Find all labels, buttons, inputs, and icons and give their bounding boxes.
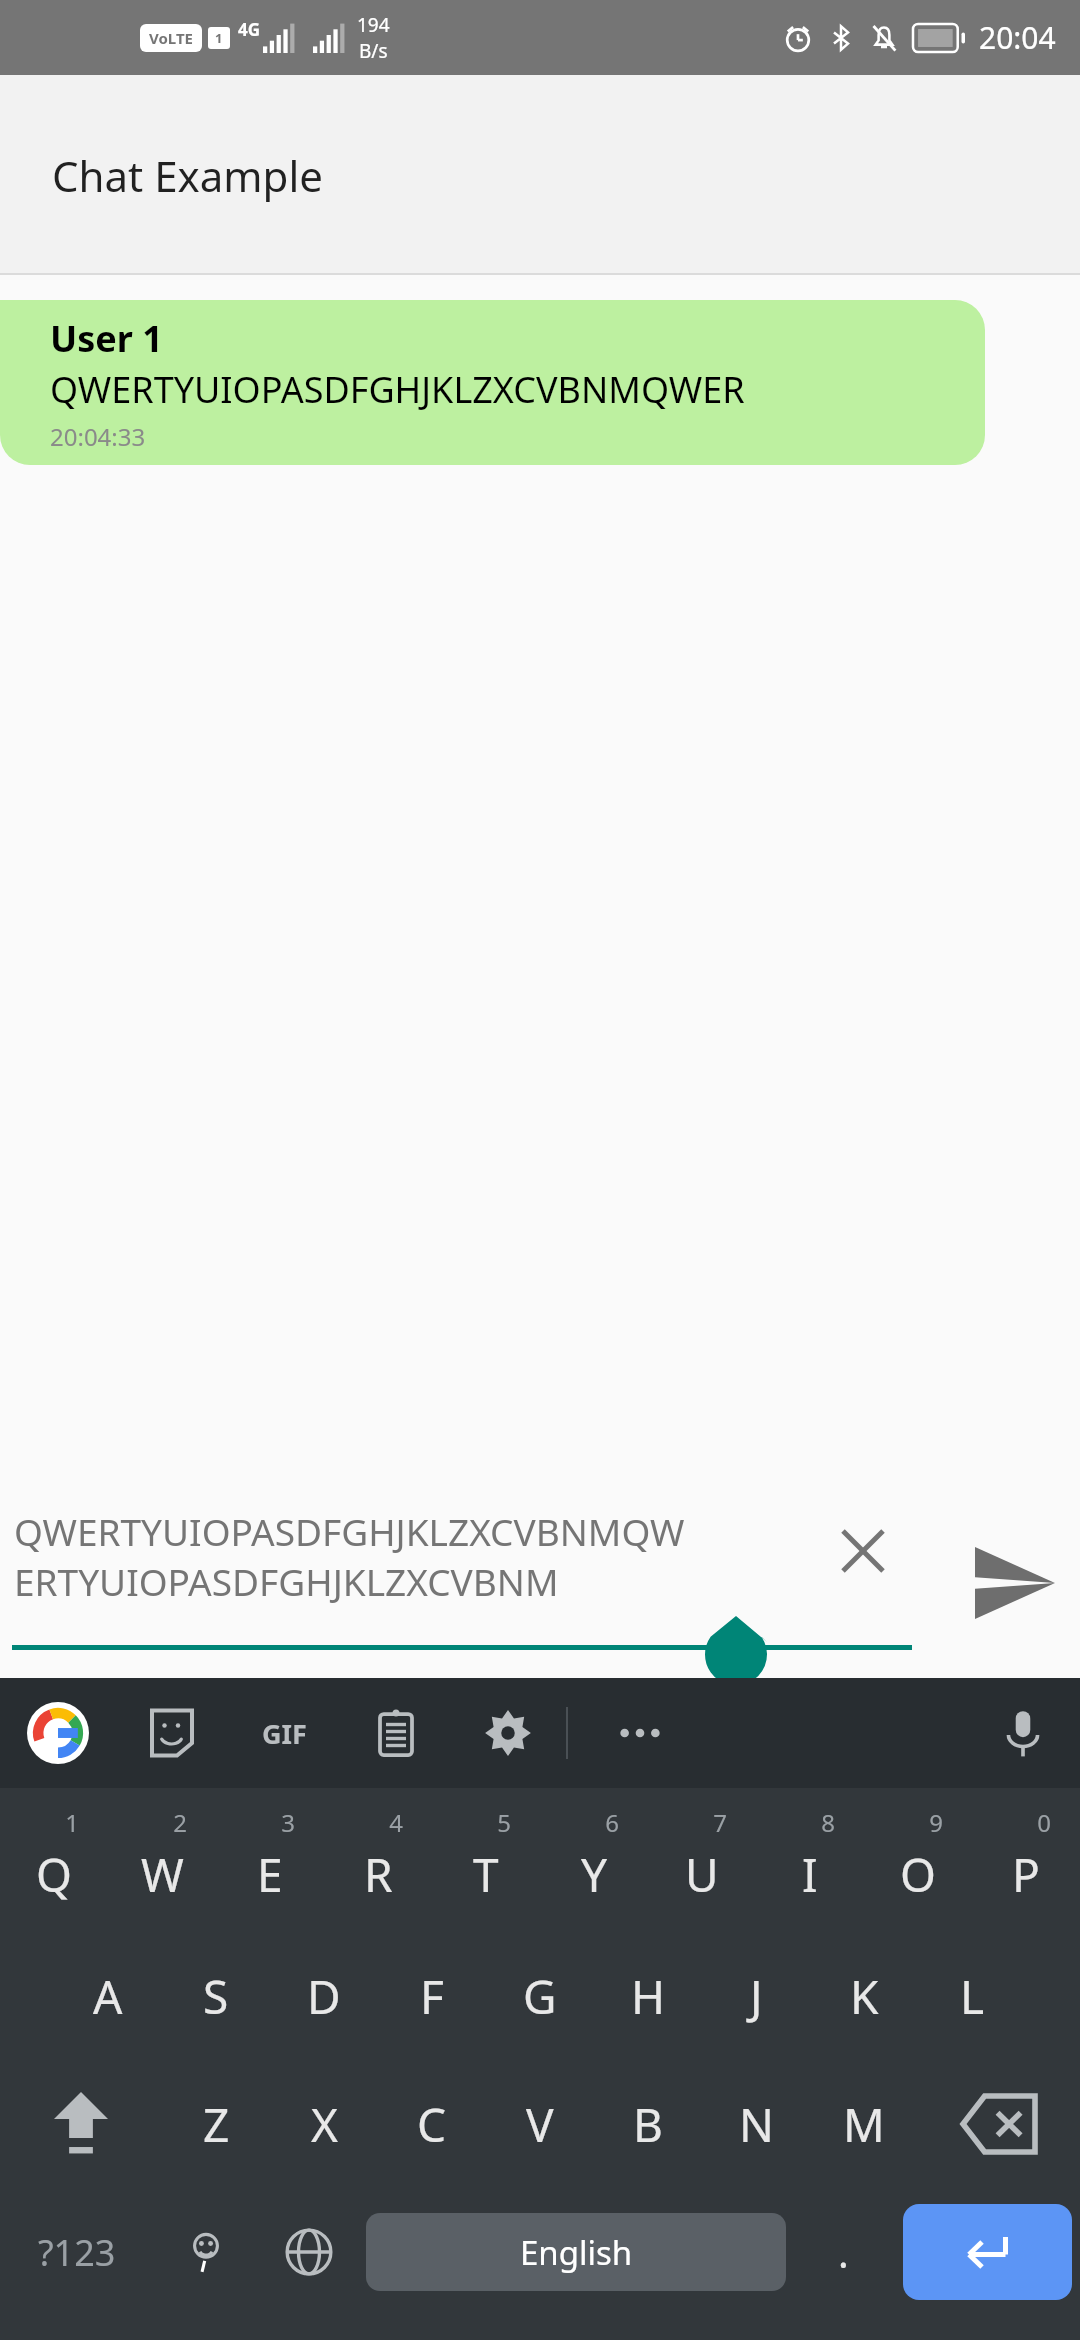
staticText: VoLTE (149, 28, 193, 48)
staticText: 1 (65, 1806, 79, 1839)
staticText: R (364, 1843, 393, 1906)
staticText: U (685, 1843, 719, 1906)
button[interactable]: 5 (432, 1804, 540, 1932)
staticText: 20:04 (979, 17, 1056, 58)
staticText: ?123 (38, 2228, 116, 2277)
button[interactable]: F (378, 1932, 486, 2060)
staticText: English (520, 2230, 633, 2275)
button[interactable]: More options (610, 1703, 670, 1763)
staticText: N (739, 2093, 774, 2156)
staticText: J (750, 1965, 763, 2028)
button[interactable]: Backspace (918, 2060, 1080, 2188)
button[interactable]: Stickers (142, 1703, 202, 1763)
button[interactable]: Emoji (154, 2188, 257, 2316)
staticText: 194 (357, 12, 390, 38)
staticText: Chat Example (52, 147, 323, 204)
staticText: 0 (1037, 1806, 1051, 1839)
button[interactable]: 1 (0, 1804, 108, 1932)
button[interactable]: User 1 (0, 300, 985, 465)
staticText: 1 (215, 29, 223, 47)
staticText: 6 (605, 1806, 619, 1839)
staticText: L (960, 1965, 985, 2028)
staticText: C (417, 2093, 447, 2156)
staticText: 5 (497, 1806, 511, 1839)
staticText: F (420, 1965, 444, 2028)
button[interactable]: Google (26, 1701, 90, 1765)
button[interactable]: 3 (216, 1804, 324, 1932)
button[interactable]: M (810, 2060, 918, 2188)
button[interactable]: 9 (864, 1804, 972, 1932)
button[interactable]: 6 (540, 1804, 648, 1932)
button[interactable]: V (486, 2060, 594, 2188)
button[interactable]: English (366, 2213, 786, 2291)
button[interactable]: Send (950, 1488, 1080, 1678)
staticText: 7 (713, 1806, 727, 1839)
staticText: 8 (821, 1806, 835, 1839)
staticText: G (523, 1965, 557, 2028)
button[interactable]: Change language (257, 2188, 360, 2316)
staticText: Z (203, 2093, 230, 2156)
button[interactable]: B (594, 2060, 702, 2188)
button[interactable]: K (810, 1932, 918, 2060)
staticText: A (93, 1965, 123, 2028)
staticText: 4 (389, 1806, 403, 1839)
staticText: X (311, 2093, 338, 2156)
button[interactable]: C (378, 2060, 486, 2188)
button[interactable]: 8 (756, 1804, 864, 1932)
button[interactable]: Z (162, 2060, 270, 2188)
staticText: B (633, 2093, 663, 2156)
staticText: ERTYUIOPASDFGHJKLZXCVBNM (14, 1556, 559, 1606)
button[interactable]: Clear text (828, 1516, 898, 1586)
button[interactable]: Shift (0, 2060, 162, 2188)
staticText: O (900, 1843, 936, 1906)
staticText: Q (36, 1843, 72, 1906)
staticText: QWERTYUIOPASDFGHJKLZXCVBNMQWER (50, 365, 745, 414)
button[interactable]: X (270, 2060, 378, 2188)
staticText: I (802, 1843, 818, 1906)
button[interactable]: G (486, 1932, 594, 2060)
button[interactable]: Clipboard (366, 1703, 426, 1763)
button[interactable]: A (54, 1932, 162, 2060)
staticText: H (631, 1965, 666, 2028)
staticText: GIF (262, 1715, 307, 1752)
button[interactable]: Settings (478, 1703, 538, 1763)
button[interactable]: 4 (324, 1804, 432, 1932)
staticText: 2 (173, 1806, 187, 1839)
staticText: M (843, 2093, 885, 2156)
button[interactable]: D (270, 1932, 378, 2060)
button[interactable]: S (162, 1932, 270, 2060)
staticText: K (850, 1965, 879, 2028)
staticText: . (838, 2225, 849, 2279)
button[interactable]: Enter (903, 2204, 1072, 2300)
staticText: QWERTYUIOPASDFGHJKLZXCVBNMQW (14, 1506, 685, 1556)
staticText: S (203, 1965, 229, 2028)
staticText: B/s (359, 38, 388, 64)
button[interactable]: . (792, 2188, 895, 2316)
staticText: 4G (238, 18, 261, 41)
button[interactable]: ?123 (0, 2188, 154, 2316)
button[interactable]: 7 (648, 1804, 756, 1932)
button[interactable]: L (918, 1932, 1026, 2060)
button[interactable]: N (702, 2060, 810, 2188)
staticText: 9 (929, 1806, 943, 1839)
staticText: T (473, 1843, 499, 1906)
staticText: V (526, 2093, 554, 2156)
staticText: D (307, 1965, 341, 2028)
staticText: P (1012, 1843, 1040, 1906)
staticText: E (257, 1843, 283, 1906)
staticText: Y (581, 1843, 608, 1906)
button[interactable]: 2 (108, 1804, 216, 1932)
button[interactable]: GIF (254, 1703, 314, 1763)
button[interactable]: Voice input (992, 1702, 1054, 1764)
staticText: 20:04:33 (50, 420, 146, 453)
button[interactable]: H (594, 1932, 702, 2060)
staticText: W (141, 1843, 184, 1906)
button[interactable]: J (702, 1932, 810, 2060)
staticText: 3 (281, 1806, 295, 1839)
staticText: User 1 (50, 314, 163, 363)
button[interactable]: 0 (972, 1804, 1080, 1932)
